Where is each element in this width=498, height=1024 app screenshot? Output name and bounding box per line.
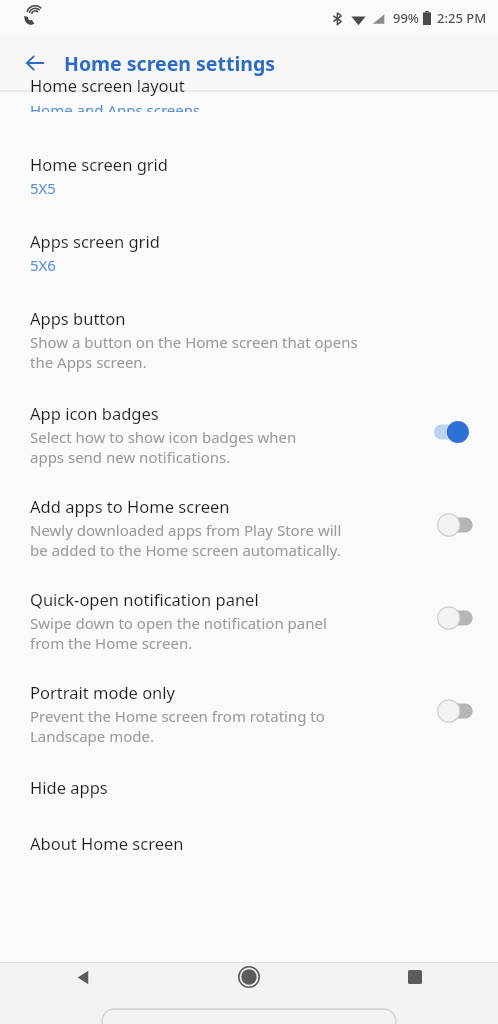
button[interactable]: Quick-open notification panel	[0, 564, 498, 657]
button[interactable]: Home screen grid	[0, 131, 498, 202]
staticText: Home and Apps screens	[30, 100, 201, 112]
staticText: About Home screen	[30, 832, 184, 854]
staticText: Home screen settings	[64, 50, 276, 77]
other: Portrait mode only	[434, 699, 480, 723]
staticText: Home screen grid	[30, 153, 169, 175]
staticText: Select how to show icon badges when apps…	[30, 427, 297, 467]
button[interactable]: Add apps to Home screen	[0, 471, 498, 564]
button[interactable]: Back	[60, 954, 106, 1000]
button[interactable]: Portrait mode only	[0, 657, 498, 750]
staticText: 2:25 PM	[437, 9, 487, 27]
staticText: 5X6	[30, 255, 56, 275]
staticText: 99%	[393, 9, 419, 27]
staticText: Prevent the Home screen from rotating to…	[30, 706, 325, 746]
button[interactable]: Apps screen grid	[0, 202, 498, 279]
button[interactable]: Hide apps	[0, 750, 498, 800]
button[interactable]: About Home screen	[0, 800, 498, 856]
other: Quick-open notification panel	[434, 606, 480, 630]
staticText: Show a button on the Home screen that op…	[30, 332, 358, 372]
staticText: Apps button	[30, 307, 126, 329]
staticText: Newly downloaded apps from Play Store wi…	[30, 520, 342, 560]
staticText: App icon badges	[30, 402, 159, 424]
button[interactable]: Home	[226, 954, 272, 1000]
button[interactable]: Recent apps	[392, 954, 438, 1000]
staticText: Swipe down to open the notification pane…	[30, 613, 327, 653]
button[interactable]: Back	[14, 42, 56, 84]
button[interactable]: Apps button	[0, 279, 498, 376]
staticText: Apps screen grid	[30, 230, 160, 252]
staticText: Quick-open notification panel	[30, 588, 259, 610]
staticText: Add apps to Home screen	[30, 495, 230, 517]
other: Add apps to Home screen	[434, 513, 480, 537]
button[interactable]: App icon badges	[0, 376, 498, 471]
staticText: Hide apps	[30, 776, 108, 798]
other: App icon badges	[434, 420, 480, 444]
staticText: 5X5	[30, 178, 56, 198]
staticText: Home screen layout	[30, 74, 185, 96]
staticText: Portrait mode only	[30, 681, 175, 703]
